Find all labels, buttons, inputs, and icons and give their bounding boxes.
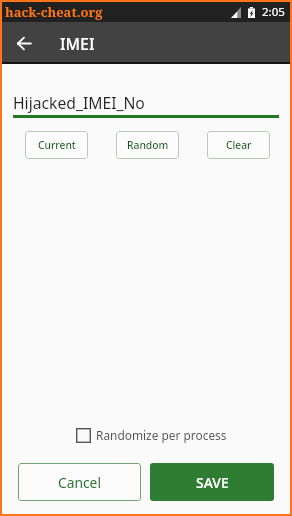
staticText: hack-cheat.org: [5, 3, 103, 21]
button[interactable]: SAVE: [150, 463, 274, 501]
staticText: Current: [38, 138, 76, 152]
staticText: SAVE: [196, 473, 229, 492]
staticText: 2:05: [262, 4, 285, 20]
staticText: Clear: [226, 138, 252, 152]
button[interactable]: Cancel: [18, 463, 141, 501]
staticText: Random: [127, 138, 169, 152]
button[interactable]: Current: [25, 131, 88, 159]
button[interactable]: Randomize per process: [76, 427, 227, 443]
button[interactable]: Back: [2, 22, 46, 64]
staticText: IMEI: [60, 33, 95, 55]
staticText: Cancel: [58, 473, 101, 492]
staticText: Hijacked_IMEI_No: [13, 92, 145, 113]
staticText: Randomize per process: [96, 427, 227, 443]
button[interactable]: Clear: [207, 131, 270, 159]
button[interactable]: Random: [116, 131, 179, 159]
